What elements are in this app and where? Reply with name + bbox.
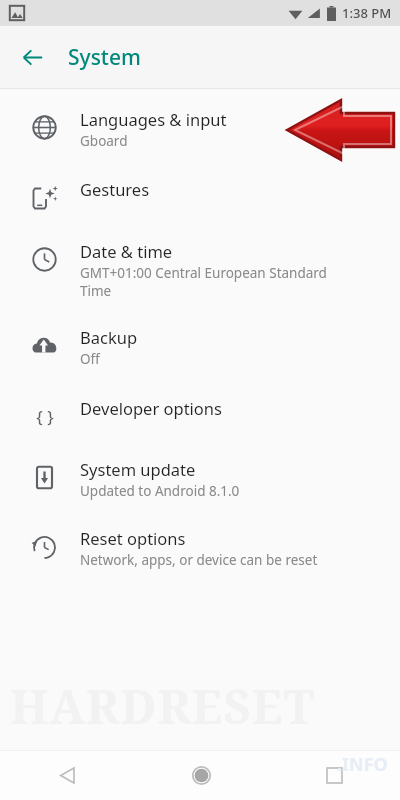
- staticText: Backup: [80, 326, 138, 348]
- button[interactable]: Languages & input: [0, 89, 400, 156]
- staticText: GMT+01:00 Central European Standard Time: [80, 264, 327, 300]
- button[interactable]: Home: [177, 751, 225, 799]
- staticText: Developer options: [80, 397, 222, 419]
- button[interactable]: Recent apps: [310, 751, 358, 799]
- button[interactable]: Back: [10, 35, 54, 79]
- button[interactable]: { }: [0, 374, 400, 437]
- staticText: Updated to Android 8.1.0: [80, 482, 240, 500]
- staticText: System: [68, 43, 141, 72]
- staticText: Languages & input: [80, 108, 227, 130]
- staticText: Date & time: [80, 240, 173, 262]
- button[interactable]: Back: [43, 751, 91, 799]
- staticText: Gboard: [80, 132, 128, 150]
- staticText: System update: [80, 458, 196, 480]
- button[interactable]: Reset options: [0, 506, 400, 575]
- staticText: 1:38 PM: [342, 4, 392, 22]
- staticText: Network, apps, or device can be reset: [80, 551, 318, 569]
- button[interactable]: Gestures: [0, 156, 400, 218]
- staticText: HARDRESET: [10, 674, 316, 738]
- staticText: Reset options: [80, 527, 186, 549]
- button[interactable]: System update: [0, 437, 400, 506]
- button[interactable]: Backup: [0, 306, 400, 374]
- staticText: Gestures: [80, 178, 150, 200]
- staticText: { }: [36, 405, 54, 428]
- staticText: .INFO: [337, 752, 388, 777]
- button[interactable]: Date & time: [0, 218, 400, 306]
- staticText: Off: [80, 350, 100, 368]
